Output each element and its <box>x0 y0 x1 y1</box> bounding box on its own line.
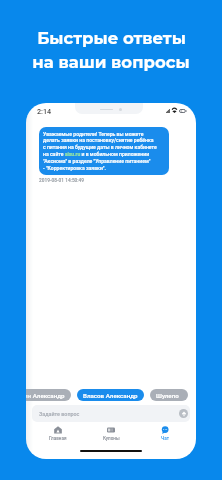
staticText: Шулепова Вален <box>156 392 182 399</box>
button[interactable]: Главная <box>36 426 80 442</box>
other: Send <box>179 409 188 418</box>
button[interactable]: ин Александр <box>26 389 71 401</box>
staticText: Быстрые ответы <box>37 28 186 48</box>
staticText: Чат <box>161 436 169 441</box>
button[interactable]: Задайте вопрос <box>32 405 190 422</box>
button[interactable]: Уважаемые родители! Теперь вы можете дел… <box>39 127 169 175</box>
button[interactable]: Чат <box>143 426 187 442</box>
staticText: ин Александр <box>26 392 65 399</box>
staticText: Купоны <box>103 436 120 441</box>
staticText: Власов Александр <box>83 392 138 399</box>
button[interactable]: Власов Александр <box>77 389 144 401</box>
staticText: Задайте вопрос <box>39 411 80 417</box>
staticText: на ваши вопросы <box>32 52 190 72</box>
staticText: Уважаемые родители! Теперь вы можете дел… <box>43 131 157 171</box>
staticText: 2019-08-01 14:50:49 <box>39 178 85 184</box>
staticText: Главная <box>49 436 67 441</box>
button[interactable]: Шулепова Вален <box>150 389 188 401</box>
staticText: 2:14 <box>37 107 52 115</box>
button[interactable]: Купоны <box>89 426 133 442</box>
